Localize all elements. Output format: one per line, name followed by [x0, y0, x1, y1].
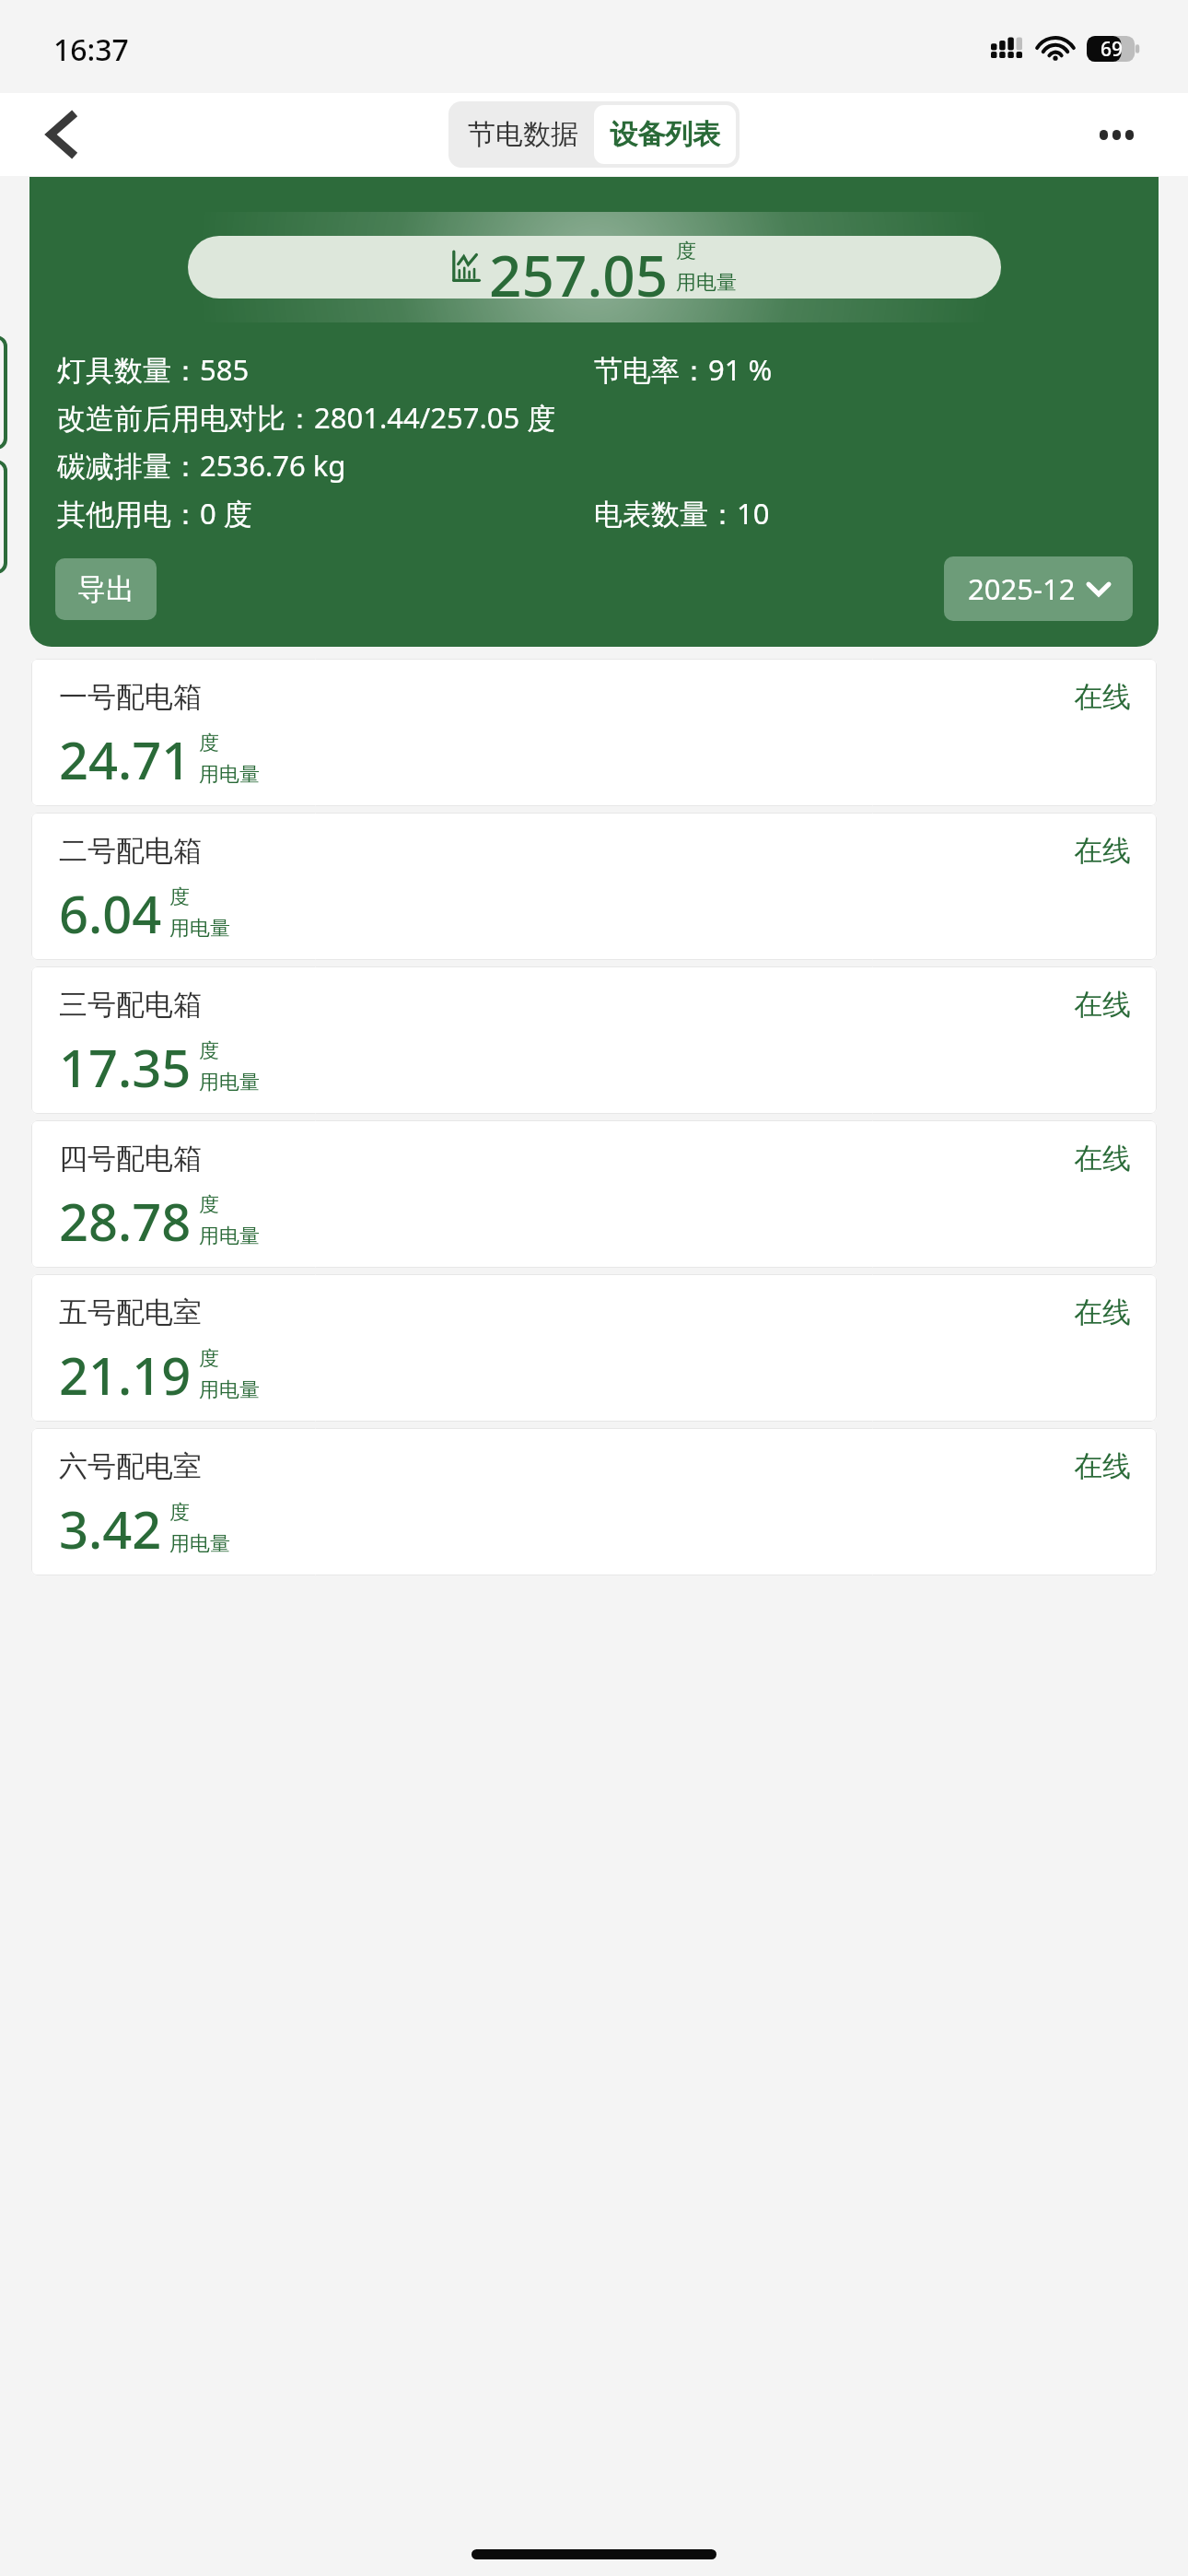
staticText: 度	[676, 239, 696, 264]
staticText: 257.05	[489, 236, 669, 299]
staticText: 24.71	[59, 724, 192, 794]
staticText: 节电率：91 %	[594, 350, 773, 389]
button[interactable]: 三号配电箱	[31, 966, 1157, 1114]
staticText: 在线	[1074, 1294, 1131, 1330]
staticText: 用电量	[199, 1224, 260, 1249]
staticText: 设备列表	[610, 117, 720, 152]
staticText: 在线	[1074, 1448, 1131, 1484]
button[interactable]: 二号配电箱	[31, 813, 1157, 960]
staticText: 度	[199, 1038, 219, 1064]
staticText: 在线	[1074, 987, 1131, 1023]
staticText: 碳减排量：2536.76 kg	[57, 446, 346, 485]
staticText: 度	[199, 1346, 219, 1372]
staticText: 四号配电箱	[59, 1141, 202, 1177]
staticText: 2025-12	[968, 569, 1076, 608]
button[interactable]: More options	[1089, 107, 1144, 162]
staticText: 69	[1101, 36, 1124, 62]
staticText: 电表数量：10	[594, 494, 770, 533]
button[interactable]: 节电数据	[452, 105, 594, 164]
staticText: 在线	[1074, 679, 1131, 715]
staticText: 用电量	[676, 270, 737, 296]
staticText: 度	[199, 731, 219, 756]
staticText: 度	[169, 884, 190, 910]
staticText: 六号配电室	[59, 1448, 202, 1484]
staticText: 度	[169, 1500, 190, 1526]
staticText: 导出	[77, 571, 134, 607]
staticText: 用电量	[199, 1070, 260, 1095]
staticText: 三号配电箱	[59, 987, 202, 1023]
staticText: 五号配电室	[59, 1294, 202, 1330]
button[interactable]: 四号配电箱	[31, 1120, 1157, 1268]
staticText: 用电量	[199, 1377, 260, 1403]
staticText: 改造前后用电对比：2801.44/257.05 度	[57, 398, 556, 437]
staticText: 6.04	[59, 878, 162, 948]
button[interactable]: 导出	[55, 558, 157, 620]
staticText: 度	[199, 1192, 219, 1218]
staticText: 16:37	[53, 29, 129, 70]
staticText: 二号配电箱	[59, 833, 202, 869]
button[interactable]: 257.05	[29, 177, 1159, 647]
staticText: 21.19	[59, 1340, 192, 1410]
button[interactable]: 五号配电室	[31, 1274, 1157, 1422]
staticText: 在线	[1074, 833, 1131, 869]
staticText: 28.78	[59, 1186, 192, 1256]
button[interactable]: 2025-12	[944, 556, 1133, 621]
staticText: 节电数据	[468, 117, 578, 152]
staticText: 17.35	[59, 1032, 192, 1102]
button[interactable]: 一号配电箱	[31, 659, 1157, 806]
staticText: 用电量	[169, 1531, 230, 1557]
button[interactable]: 六号配电室	[31, 1428, 1157, 1575]
staticText: 其他用电：0 度	[57, 494, 252, 533]
button[interactable]: 设备列表	[594, 105, 736, 164]
button[interactable]: Back	[35, 108, 88, 161]
staticText: 灯具数量：585	[57, 350, 250, 389]
staticText: 在线	[1074, 1141, 1131, 1177]
staticText: 3.42	[59, 1493, 162, 1563]
staticText: 用电量	[169, 916, 230, 942]
staticText: 用电量	[199, 762, 260, 788]
staticText: 一号配电箱	[59, 679, 202, 715]
